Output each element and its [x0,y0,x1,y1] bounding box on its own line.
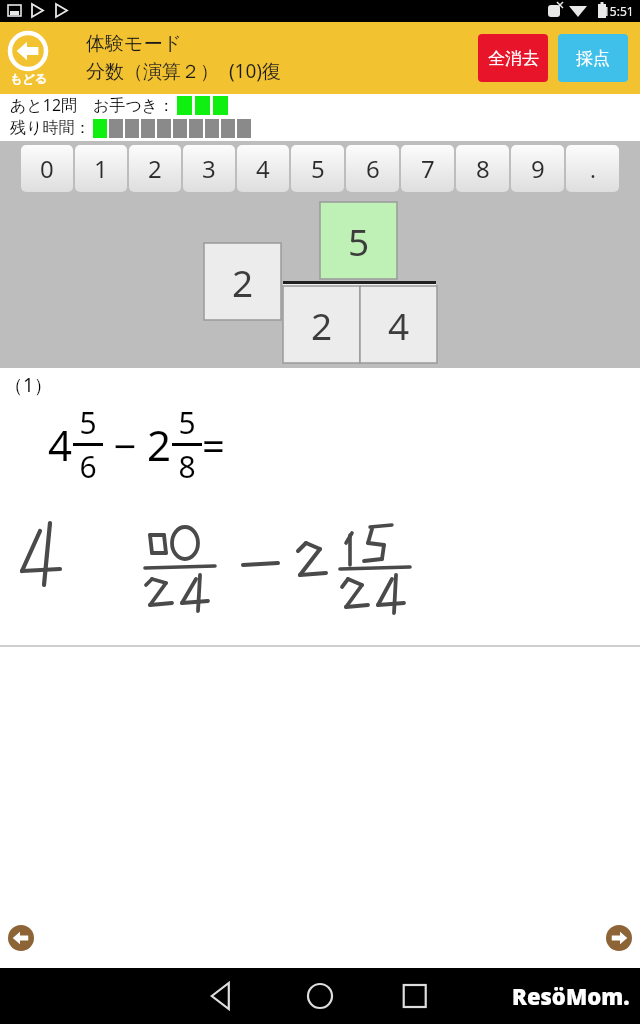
button[interactable]: 5 [320,202,397,279]
staticText: 採点 [576,48,610,69]
button[interactable]: 1 [75,145,127,192]
staticText: 4 [388,300,410,350]
button[interactable]: Next [606,925,632,951]
staticText: 15:51 [603,3,634,19]
button[interactable]: 全消去 [478,34,548,82]
button[interactable]: 2 [204,243,281,320]
staticText: あと12問 お手つき： [10,94,175,116]
staticText: 5 [348,216,370,266]
staticText: 8 [178,446,196,487]
button[interactable]: Previous [8,925,34,951]
staticText: 体験モード [86,32,182,56]
staticText: 4 [48,416,73,473]
staticText: 2 [147,416,172,473]
staticText: 5 [311,152,325,185]
staticText: 7 [421,152,435,185]
button[interactable]: 6 [346,145,399,192]
staticText: 5 [79,402,97,443]
button[interactable]: 2 [129,145,181,192]
staticText: ResöMom. [512,981,630,1011]
staticText: . [590,154,596,184]
staticText: 2 [311,300,333,350]
button[interactable]: 2 [283,286,360,363]
button[interactable]: 7 [401,145,454,192]
staticText: 1 [94,152,108,185]
staticText: 0 [40,152,54,185]
button[interactable]: . [566,145,619,192]
button[interactable]: 0 [21,145,73,192]
button[interactable]: 5 [291,145,344,192]
staticText: 分数（演算２） (10)復 [86,58,282,84]
staticText: 4 [256,152,270,185]
staticText: 2 [232,257,254,307]
staticText: 6 [366,152,380,185]
staticText: 残り時間： [10,118,91,138]
staticText: 8 [476,152,490,185]
button[interactable]: 9 [511,145,564,192]
button[interactable]: もどる [8,31,48,86]
staticText: 全消去 [488,48,539,69]
button[interactable]: 4 [237,145,289,192]
staticText: 2 [148,152,162,185]
staticText: 5 [178,402,196,443]
staticText: 6 [79,446,97,487]
staticText: = [202,418,225,472]
staticText: 3 [202,152,216,185]
button[interactable]: 8 [456,145,509,192]
staticText: （1） [4,372,53,398]
staticText: 9 [531,152,545,185]
staticText: − [103,418,147,472]
button[interactable]: 4 [360,286,437,363]
staticText: もどる [10,71,47,86]
button[interactable]: 3 [183,145,235,192]
button[interactable]: 採点 [558,34,628,82]
